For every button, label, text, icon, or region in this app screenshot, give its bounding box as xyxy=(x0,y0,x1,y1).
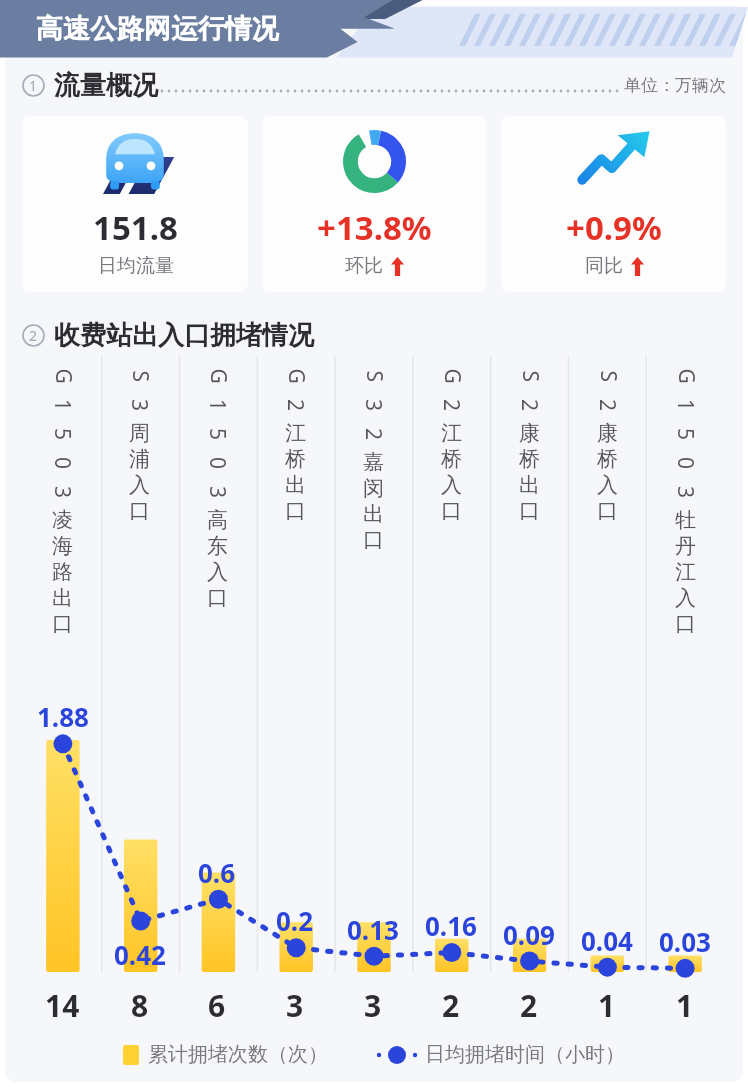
staticText: G xyxy=(48,368,77,384)
staticText: 口 xyxy=(129,498,150,524)
button[interactable] xyxy=(0,356,748,1038)
staticText: 3 xyxy=(48,486,77,499)
staticText: 入 xyxy=(207,559,228,585)
staticText: 1.88 xyxy=(37,699,89,734)
staticText: 0.6 xyxy=(198,855,236,890)
staticText: 口 xyxy=(207,585,228,611)
staticText: 周 xyxy=(129,420,150,446)
staticText: 入 xyxy=(597,472,618,498)
other: Year over year xyxy=(577,130,651,188)
staticText: 牡 xyxy=(675,507,696,533)
staticText: 5 xyxy=(671,428,700,441)
staticText: 2 xyxy=(515,399,544,412)
staticText: 东 xyxy=(207,533,228,559)
staticText: 入 xyxy=(441,472,462,498)
staticText: 出 xyxy=(285,472,306,498)
staticText: 0.04 xyxy=(581,923,633,958)
staticText: 闵 xyxy=(363,475,384,501)
button[interactable]: Year over year xyxy=(501,116,726,292)
staticText: S xyxy=(359,370,388,382)
staticText: 桥 xyxy=(441,446,462,472)
staticText: G xyxy=(203,368,232,384)
staticText: 0.03 xyxy=(659,924,711,959)
staticText: 2 xyxy=(593,399,622,412)
staticText: 1 xyxy=(203,399,232,412)
staticText: 2 xyxy=(442,985,460,1026)
staticText: 151.8 xyxy=(93,205,178,250)
staticText: 环比 xyxy=(345,254,383,278)
staticText: 3 xyxy=(203,486,232,499)
staticText: 路 xyxy=(52,559,73,585)
staticText: 14 xyxy=(45,985,80,1026)
staticText: 口 xyxy=(675,611,696,637)
staticText: 出 xyxy=(363,501,384,527)
staticText: 口 xyxy=(285,498,306,524)
staticText: 3 xyxy=(125,399,154,412)
staticText: 口 xyxy=(519,498,540,524)
staticText: 累计拥堵次数（次） xyxy=(148,1042,328,1067)
staticText: 1 xyxy=(676,985,694,1026)
staticText: 2 xyxy=(437,399,466,412)
staticText: 3 xyxy=(364,985,382,1026)
staticText: G xyxy=(437,368,466,384)
staticText: 0 xyxy=(48,457,77,470)
staticText: S xyxy=(125,370,154,382)
staticText: G xyxy=(281,368,310,384)
staticText: 江 xyxy=(675,559,696,585)
staticText: 0.13 xyxy=(347,912,399,947)
button[interactable]: Month over month xyxy=(262,116,487,292)
staticText: 2 xyxy=(29,326,38,345)
staticText: 出 xyxy=(519,472,540,498)
staticText: 桥 xyxy=(597,446,618,472)
staticText: 3 xyxy=(359,399,388,412)
staticText: 0 xyxy=(203,457,232,470)
staticText: 2 xyxy=(520,985,538,1026)
staticText: 口 xyxy=(52,611,73,637)
staticText: 1 xyxy=(598,985,616,1026)
staticText: 口 xyxy=(363,527,384,553)
staticText: 浦 xyxy=(129,446,150,472)
staticText: 2 xyxy=(359,428,388,441)
staticText: 0.42 xyxy=(114,937,166,972)
staticText: 高 xyxy=(207,507,228,533)
staticText: 江 xyxy=(285,420,306,446)
staticText: 丹 xyxy=(675,533,696,559)
staticText: 康 xyxy=(597,420,618,446)
staticText: 口 xyxy=(597,498,618,524)
staticText: 3 xyxy=(671,486,700,499)
staticText: 3 xyxy=(286,985,304,1026)
button[interactable]: 累计拥堵次数（次） xyxy=(119,1038,332,1071)
staticText: 0 xyxy=(671,457,700,470)
staticText: 桥 xyxy=(519,446,540,472)
staticText: 入 xyxy=(129,472,150,498)
staticText: 1 xyxy=(671,399,700,412)
staticText: 0.2 xyxy=(276,903,314,938)
staticText: 高速公路网运行情况 xyxy=(36,12,279,46)
staticText: 康 xyxy=(519,420,540,446)
other: Average daily traffic xyxy=(95,130,175,194)
staticText: 出 xyxy=(52,585,73,611)
staticText: G xyxy=(671,368,700,384)
staticText: 2 xyxy=(281,399,310,412)
staticText: 流量概况 xyxy=(54,69,158,102)
staticText: 收费站出入口拥堵情况 xyxy=(54,319,314,352)
button[interactable]: Average daily traffic xyxy=(22,116,248,292)
staticText: S xyxy=(593,370,622,382)
staticText: 1 xyxy=(29,76,38,95)
staticText: 海 xyxy=(52,533,73,559)
other: Month over month xyxy=(343,130,406,193)
staticText: 1 xyxy=(48,399,77,412)
staticText: +13.8% xyxy=(317,205,432,250)
staticText: 单位：万辆次 xyxy=(624,75,726,96)
staticText: 桥 xyxy=(285,446,306,472)
staticText: 嘉 xyxy=(363,449,384,475)
staticText: 0.09 xyxy=(503,917,555,952)
staticText: 口 xyxy=(441,498,462,524)
staticText: S xyxy=(515,370,544,382)
staticText: 6 xyxy=(208,985,226,1026)
staticText: 凌 xyxy=(52,507,73,533)
staticText: 0.16 xyxy=(425,908,477,943)
button[interactable]: 日均拥堵时间（小时） xyxy=(372,1038,629,1071)
staticText: +0.9% xyxy=(566,205,662,250)
staticText: 日均拥堵时间（小时） xyxy=(425,1042,625,1067)
